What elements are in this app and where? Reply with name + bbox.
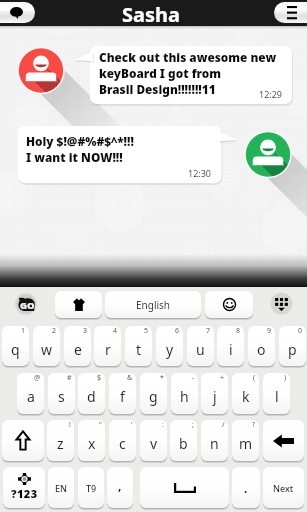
staticText: 5 xyxy=(144,326,149,336)
button[interactable]: 3 xyxy=(64,326,91,366)
staticText: * xyxy=(160,373,164,383)
button[interactable]: , xyxy=(107,467,133,508)
button[interactable]: + xyxy=(201,373,228,414)
staticText: r xyxy=(105,340,111,359)
staticText: l xyxy=(275,387,279,406)
staticText: ?123 xyxy=(11,486,38,501)
staticText: u xyxy=(196,340,205,359)
staticText: " xyxy=(99,420,102,430)
button[interactable]: English xyxy=(105,291,201,318)
button[interactable]: Conversations xyxy=(0,2,35,23)
button[interactable]: EN xyxy=(48,467,74,508)
staticText: - xyxy=(192,373,195,383)
staticText: Check out this awesome new xyxy=(99,49,277,65)
staticText: o xyxy=(257,340,266,359)
button[interactable]: ? xyxy=(232,420,259,461)
button[interactable]: Change keyboard xyxy=(270,292,293,315)
button[interactable]: 0 xyxy=(279,326,306,366)
button[interactable]: - xyxy=(171,373,198,414)
staticText: y xyxy=(166,340,174,359)
staticText: ? xyxy=(252,420,256,430)
staticText: T9 xyxy=(86,482,97,494)
staticText: ( xyxy=(253,373,256,383)
button[interactable]: # xyxy=(48,373,75,414)
button[interactable]: 2 xyxy=(33,326,60,366)
staticText: I want it NOW!!! xyxy=(26,149,123,165)
button[interactable]: T9 xyxy=(78,467,104,508)
button[interactable]: GO Keyboard xyxy=(15,293,37,315)
button[interactable]: $ xyxy=(78,373,105,414)
staticText: v xyxy=(150,434,158,453)
staticText: Brasil Design!!!!!!!11 xyxy=(99,81,216,97)
staticText: f xyxy=(120,387,125,406)
button[interactable]: / xyxy=(201,420,228,461)
button[interactable]: Menu xyxy=(274,2,307,23)
button[interactable]: Next xyxy=(263,467,304,508)
button[interactable]: 5 xyxy=(125,326,152,366)
button[interactable]: 8 xyxy=(217,326,244,366)
staticText: English xyxy=(136,298,171,312)
button[interactable]: Shift xyxy=(2,420,44,461)
staticText: + xyxy=(220,373,225,383)
button[interactable]: " xyxy=(78,420,105,461)
button[interactable]: ; xyxy=(170,420,197,461)
staticText: 12:29 xyxy=(259,88,283,100)
staticText: t xyxy=(136,340,142,359)
button[interactable]: ) xyxy=(263,373,290,414)
button[interactable]: Space xyxy=(140,467,229,508)
button[interactable]: Theme xyxy=(55,291,102,318)
button[interactable]: 9 xyxy=(248,326,275,366)
staticText: a xyxy=(27,387,35,406)
staticText: e xyxy=(74,340,82,359)
staticText: d xyxy=(87,387,96,406)
button[interactable]: Symbols xyxy=(3,467,45,508)
staticText: q xyxy=(11,340,20,359)
staticText: ; xyxy=(192,420,194,430)
button[interactable]: ' xyxy=(109,420,136,461)
button[interactable]: : xyxy=(140,420,167,461)
staticText: , xyxy=(118,477,122,493)
staticText: s xyxy=(58,387,65,406)
button[interactable]: ! xyxy=(47,420,74,461)
staticText: z xyxy=(57,434,64,453)
staticText: j xyxy=(213,387,217,406)
button[interactable]: 6 xyxy=(156,326,183,366)
staticText: ' xyxy=(131,420,133,430)
staticText: h xyxy=(180,387,189,406)
button[interactable]: 7 xyxy=(187,326,214,366)
staticText: Sasha xyxy=(122,1,181,27)
staticText: # xyxy=(67,373,72,383)
staticText: 9 xyxy=(267,326,272,336)
staticText: w xyxy=(41,340,53,359)
staticText: i xyxy=(229,340,233,359)
staticText: 12:30 xyxy=(188,167,212,179)
button[interactable]: . xyxy=(232,467,260,508)
staticText: 0 xyxy=(298,326,303,336)
button[interactable]: Backspace xyxy=(263,420,304,461)
staticText: $ xyxy=(97,373,102,383)
staticText: keyBoard I got from xyxy=(99,65,222,81)
button[interactable]: * xyxy=(140,373,167,414)
staticText: k xyxy=(242,387,250,406)
staticText: Holy $!@#%#$^*!!! xyxy=(26,133,134,149)
staticText: p xyxy=(288,340,297,359)
staticText: / xyxy=(222,420,225,430)
button[interactable]: 1 xyxy=(2,326,29,366)
button[interactable]: 4 xyxy=(94,326,121,366)
staticText: x xyxy=(88,434,96,453)
button[interactable]: @ xyxy=(17,373,44,414)
staticText: g xyxy=(149,387,158,406)
staticText: b xyxy=(179,434,188,453)
button[interactable]: Emoji xyxy=(205,291,253,318)
staticText: @ xyxy=(34,373,41,383)
staticText: Next xyxy=(273,482,294,494)
staticText: 3 xyxy=(83,326,88,336)
staticText: 8 xyxy=(236,326,241,336)
staticText: 7 xyxy=(206,326,211,336)
button[interactable]: ( xyxy=(232,373,259,414)
staticText: EN xyxy=(55,482,67,494)
staticText: . xyxy=(244,480,248,496)
button[interactable]: & xyxy=(109,373,136,414)
staticText: ) xyxy=(284,373,287,383)
staticText: c xyxy=(119,434,126,453)
